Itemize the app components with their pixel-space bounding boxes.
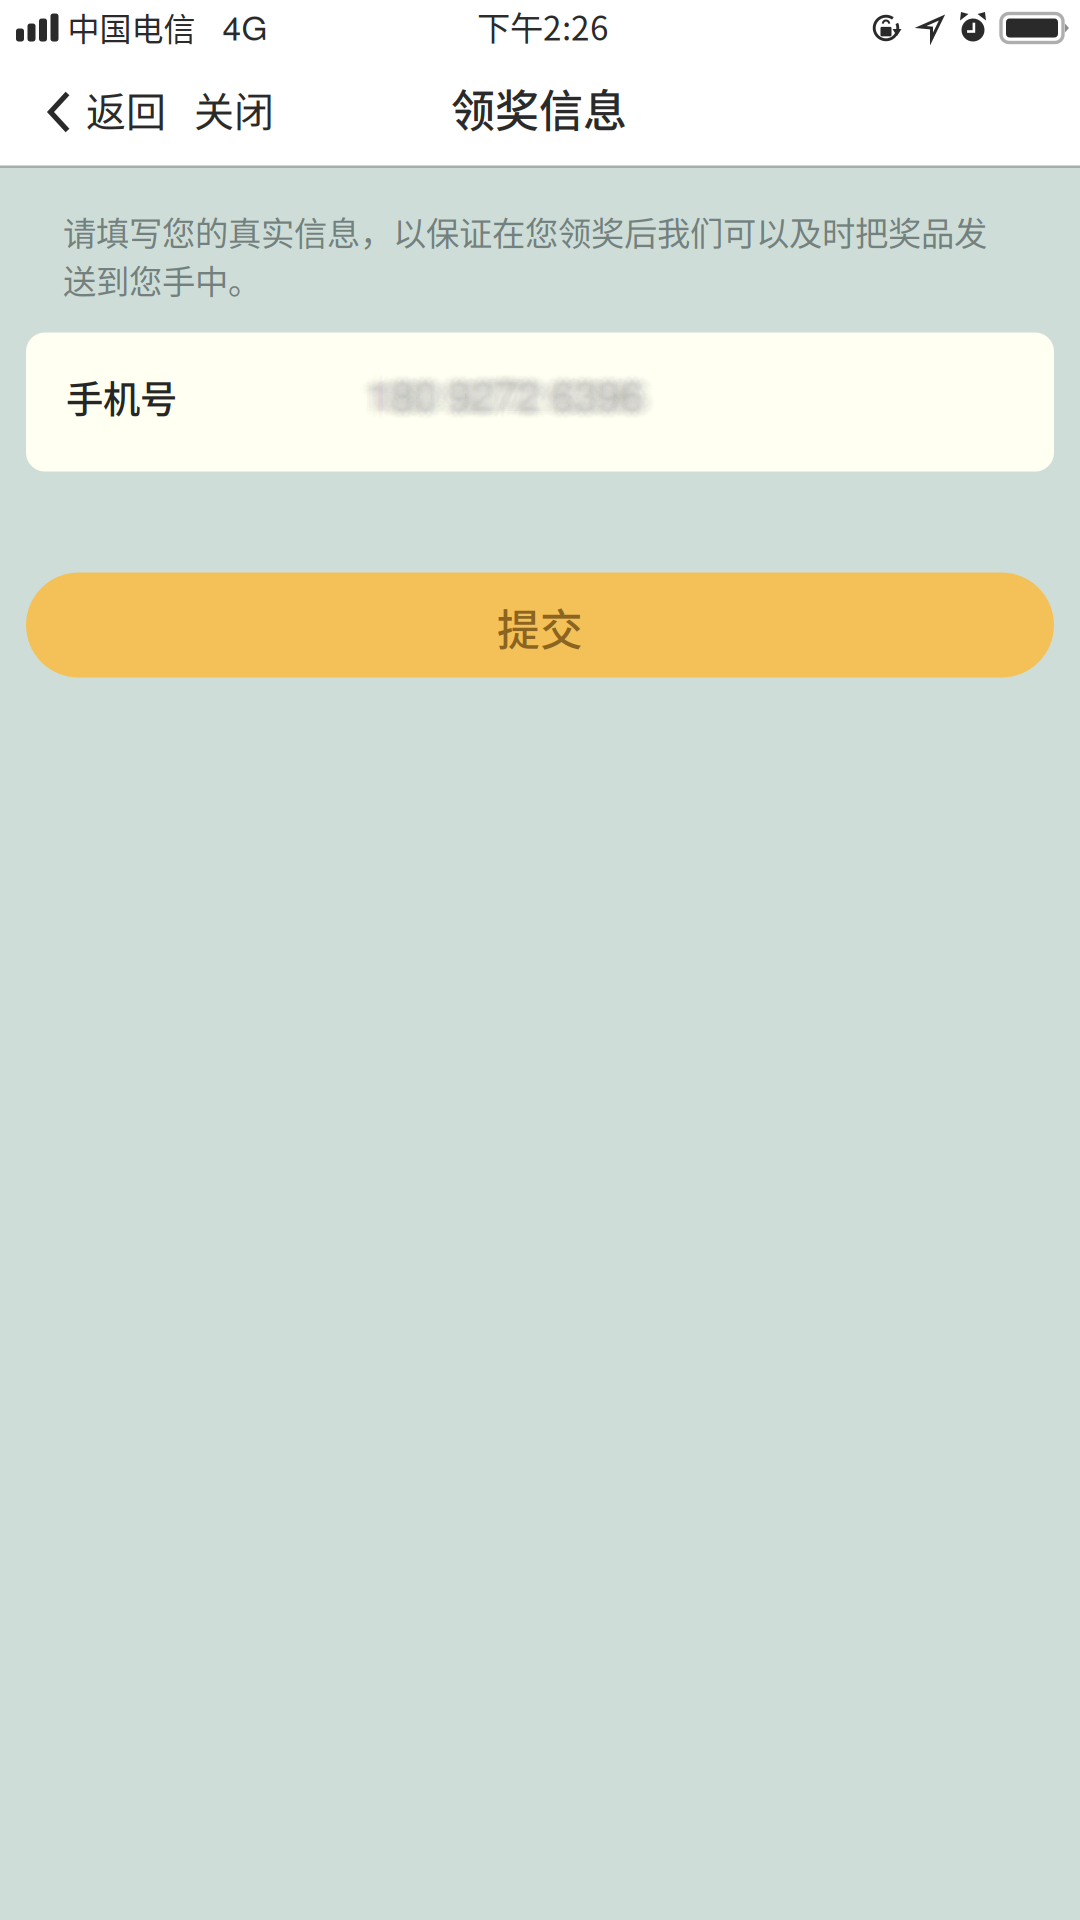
staticText: 180 9272 6396 — [358, 360, 633, 419]
staticText: 180 9272 6396 — [366, 362, 641, 421]
staticText: 180 9272 6396 — [368, 366, 643, 425]
staticText: 180 9272 6396 — [362, 369, 637, 428]
staticText: 180 9272 6396 — [368, 360, 643, 419]
staticText: 180 9272 6396 — [356, 363, 631, 423]
staticText: 180 9272 6396 — [360, 361, 635, 420]
staticText: 180 9272 6396 — [368, 362, 643, 422]
staticText: 180 9272 6396 — [375, 357, 650, 416]
staticText: 180 9272 6396 — [365, 366, 640, 425]
staticText: 180 9272 6396 — [365, 361, 640, 420]
staticText: 180 9272 6396 — [367, 364, 642, 424]
staticText: 180 9272 6396 — [363, 359, 638, 418]
staticText: 180 9272 6396 — [358, 363, 633, 423]
staticText: 180 9272 6396 — [380, 360, 655, 419]
staticText: 180 9272 6396 — [361, 370, 636, 429]
staticText: 180 9272 6396 — [368, 371, 643, 430]
staticText: 180 9272 6396 — [372, 360, 647, 419]
staticText: 180 9272 6396 — [368, 357, 643, 416]
staticText: 180 9272 6396 — [376, 363, 651, 423]
staticText: 180 9272 6396 — [367, 362, 642, 422]
staticText: 180 9272 6396 — [375, 361, 650, 420]
staticText: 180 9272 6396 — [363, 365, 638, 424]
staticText: 180 9272 6396 — [378, 363, 653, 423]
staticText: 180 9272 6396 — [368, 363, 643, 423]
staticText: 180 9272 6396 — [360, 363, 635, 423]
staticText: 中国电信 — [67, 4, 195, 50]
staticText: 180 9272 6396 — [369, 362, 644, 422]
staticText: 180 9272 6396 — [374, 358, 649, 417]
staticText: 手机号 — [66, 370, 177, 424]
staticText: 180 9272 6396 — [354, 363, 629, 423]
staticText: 领奖信息 — [451, 76, 627, 140]
staticText: 180 9272 6396 — [368, 367, 643, 426]
staticText: 180 9272 6396 — [365, 364, 640, 424]
staticText: 180 9272 6396 — [371, 366, 646, 425]
staticText: 180 9272 6396 — [363, 362, 638, 421]
staticText: 180 9272 6396 — [360, 366, 635, 425]
staticText: 180 9272 6396 — [368, 369, 643, 428]
staticText: 180 9272 6396 — [373, 368, 648, 427]
staticText: 180 9272 6396 — [370, 364, 645, 423]
staticText: 180 9272 6396 — [375, 366, 650, 425]
button[interactable]: 关闭 — [181, 62, 287, 162]
button[interactable]: 手机号 — [26, 332, 1054, 471]
staticText: 180 9272 6396 — [374, 369, 649, 428]
staticText: 180 9272 6396 — [362, 363, 637, 423]
staticText: 180 9272 6396 — [370, 362, 645, 421]
staticText: 关闭 — [194, 80, 274, 138]
staticText: 180 9272 6396 — [366, 365, 641, 424]
staticText: 180 9272 6396 — [368, 370, 643, 429]
staticText: 180 9272 6396 — [378, 360, 653, 419]
staticText: 180 9272 6396 — [361, 361, 636, 420]
staticText: 180 9272 6396 — [364, 367, 639, 426]
staticText: 下午2:26 — [477, 2, 609, 50]
staticText: 180 9272 6396 — [361, 357, 636, 416]
staticText: 请填写您的真实信息，以保证在您领奖后我们可以及时把奖品发送到您手中。 — [63, 207, 987, 303]
staticText: 180 9272 6396 — [369, 364, 644, 424]
staticText: 180 9272 6396 — [378, 367, 653, 426]
staticText: 180 9272 6396 — [372, 367, 647, 426]
staticText: 180 9272 6396 — [370, 365, 645, 424]
staticText: 180 9272 6396 — [376, 361, 651, 420]
staticText: 180 9272 6396 — [368, 361, 643, 420]
staticText: 180 9272 6396 — [363, 368, 638, 427]
staticText: 180 9272 6396 — [380, 367, 655, 426]
staticText: 180 9272 6396 — [371, 362, 646, 422]
staticText: 180 9272 6396 — [376, 366, 651, 425]
staticText: 180 9272 6396 — [356, 360, 631, 419]
staticText: 180 9272 6396 — [372, 363, 647, 423]
staticText: 返回 — [86, 80, 166, 138]
staticText: 180 9272 6396 — [375, 370, 650, 429]
staticText: 180 9272 6396 — [366, 363, 641, 422]
staticText: 提交 — [497, 596, 583, 658]
staticText: 180 9272 6396 — [366, 364, 641, 423]
staticText: 180 9272 6396 — [370, 363, 645, 423]
staticText: 180 9272 6396 — [371, 364, 646, 424]
staticText: 180 9272 6396 — [362, 358, 637, 417]
staticText: 4G — [222, 2, 267, 50]
staticText: 180 9272 6396 — [371, 361, 646, 420]
staticText: 180 9272 6396 — [373, 359, 648, 418]
staticText: 180 9272 6396 — [368, 359, 643, 418]
staticText: 180 9272 6396 — [365, 362, 640, 422]
staticText: 180 9272 6396 — [366, 363, 641, 423]
staticText: 180 9272 6396 — [368, 356, 643, 415]
button[interactable]: 提交 — [26, 572, 1054, 677]
staticText: 180 9272 6396 — [368, 364, 643, 424]
button[interactable]: 返回 — [0, 62, 181, 162]
staticText: 180 9272 6396 — [364, 363, 639, 423]
staticText: 180 9272 6396 — [358, 367, 633, 426]
staticText: 180 9272 6396 — [373, 362, 648, 421]
staticText: 180 9272 6396 — [374, 363, 649, 423]
staticText: 180 9272 6396 — [368, 368, 643, 427]
staticText: 180 9272 6396 — [370, 363, 645, 422]
staticText: 180 9272 6396 — [361, 366, 636, 425]
staticText: 180 9272 6396 — [368, 358, 643, 417]
staticText: 180 9272 6396 — [356, 367, 631, 426]
staticText: 180 9272 6396 — [373, 365, 648, 424]
staticText: 180 9272 6396 — [382, 363, 657, 423]
staticText: 180 9272 6396 — [380, 363, 655, 423]
staticText: 180 9272 6396 — [364, 360, 639, 419]
